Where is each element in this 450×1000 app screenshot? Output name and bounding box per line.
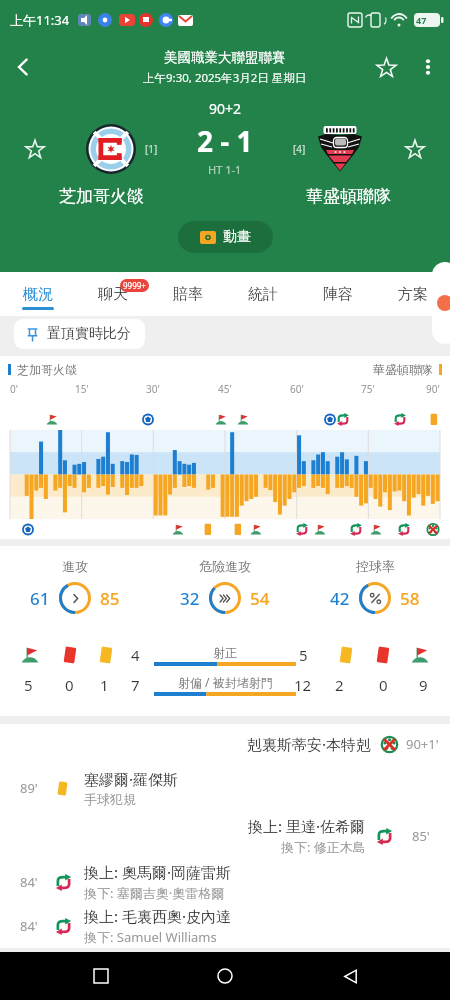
button[interactable]: 危險進攻	[150, 558, 300, 614]
staticText: 0	[379, 675, 388, 695]
button[interactable]: 控球率	[300, 558, 450, 614]
staticText: 9	[419, 675, 428, 695]
staticText: 聊天	[98, 285, 128, 304]
staticText: 84'	[20, 873, 38, 891]
staticText: 75'	[361, 382, 375, 396]
staticText: 芝加哥火燄	[30, 186, 173, 207]
button[interactable]: 賠率	[150, 272, 225, 316]
staticText: 47	[416, 14, 427, 26]
staticText: 陣容	[323, 285, 353, 304]
button[interactable]: 進攻	[0, 558, 150, 614]
button[interactable]: 陣容	[300, 272, 375, 316]
staticText: 54	[250, 587, 270, 610]
staticText: 5	[24, 675, 33, 695]
staticText: 58	[400, 587, 420, 610]
button[interactable]: Back	[0, 44, 46, 90]
staticText: 美國職業大聯盟聯賽	[164, 49, 286, 66]
staticText: 42	[330, 587, 350, 610]
staticText: 84'	[20, 917, 38, 935]
staticText: 上午11:34	[10, 11, 70, 29]
staticText: 上午9:30, 2025年3月2日 星期日	[143, 70, 307, 86]
button[interactable]: 置頂實時比分	[14, 319, 145, 349]
staticText: 89'	[20, 779, 38, 797]
staticText: 30'	[146, 382, 160, 396]
staticText: 9999+	[123, 280, 146, 291]
button[interactable]: Home	[201, 952, 249, 1000]
staticText: 2 - 1	[197, 122, 253, 160]
button[interactable]: More options	[408, 47, 448, 87]
staticText: 45'	[218, 382, 232, 396]
staticText: 85	[100, 587, 120, 610]
staticText: 1	[100, 675, 109, 695]
staticText: 換上: 奧馬爾·岡薩雷斯	[84, 862, 232, 882]
staticText: 90+1'	[406, 735, 439, 753]
button[interactable]: 方案	[375, 272, 450, 316]
staticText: 2	[335, 675, 344, 695]
staticText: 統計	[248, 285, 278, 304]
staticText: 90+2	[0, 99, 450, 118]
staticText: 60'	[290, 382, 304, 396]
staticText: 換下: 修正木島	[281, 838, 366, 856]
staticText: 換上: 毛裏西奧·皮內達	[84, 906, 232, 926]
staticText: 4	[131, 645, 140, 665]
staticText: 射偏 / 被封堵射門	[178, 674, 273, 690]
button[interactable]: 85'	[0, 812, 450, 860]
staticText: 12	[294, 675, 312, 695]
staticText: 芝加哥火燄	[17, 362, 77, 377]
staticText: 90'	[426, 382, 440, 396]
button[interactable]: Back	[326, 952, 374, 1000]
button[interactable]: Favourite	[364, 45, 408, 89]
button[interactable]: 84'	[0, 860, 450, 904]
staticText: 射正	[213, 645, 237, 660]
staticText: 進攻	[62, 558, 88, 574]
button[interactable]: 剋裏斯蒂安·本特剋	[0, 724, 450, 764]
staticText: 華盛頓聯隊	[373, 362, 433, 377]
staticText: 置頂實時比分	[47, 325, 131, 343]
staticText: 控球率	[356, 558, 395, 574]
button[interactable]: Favourite home team	[0, 120, 70, 178]
button[interactable]: Momentum chart	[0, 400, 450, 539]
staticText: 5	[299, 645, 308, 665]
staticText: 0'	[10, 382, 18, 396]
button[interactable]: 概況	[0, 272, 75, 316]
button[interactable]: 統計	[225, 272, 300, 316]
staticText: 15'	[75, 382, 89, 396]
staticText: 剋裏斯蒂安·本特剋	[247, 734, 372, 754]
button[interactable]: Promotions	[432, 262, 450, 344]
staticText: 7	[131, 675, 140, 695]
staticText: 概況	[23, 285, 53, 304]
staticText: 換下: Samuel Williams	[84, 928, 217, 946]
staticText: 0	[65, 675, 74, 695]
staticText: 換上: 里達·佐希爾	[248, 816, 366, 836]
staticText: 塞繆爾·羅傑斯	[84, 769, 179, 789]
staticText: [4]	[293, 142, 306, 156]
staticText: [1]	[145, 142, 158, 156]
staticText: 手球犯規	[84, 791, 136, 807]
button[interactable]: Favourite away team	[380, 120, 450, 178]
button[interactable]: 聊天	[75, 272, 150, 316]
staticText: 賠率	[173, 285, 203, 304]
staticText: 華盛頓聯隊	[277, 186, 420, 207]
staticText: 動畫	[223, 228, 251, 246]
button[interactable]: 84'	[0, 904, 450, 948]
button[interactable]: Recents	[77, 952, 125, 1000]
button[interactable]: 動畫	[178, 221, 273, 253]
staticText: 危險進攻	[199, 558, 251, 574]
staticText: 85'	[412, 827, 430, 845]
staticText: HT 1-1	[208, 162, 242, 177]
staticText: 61	[30, 587, 50, 610]
staticText: 32	[180, 587, 200, 610]
button[interactable]: 89'	[0, 764, 450, 812]
staticText: 方案	[398, 285, 428, 304]
staticText: 換下: 塞爾吉奧·奧雷格爾	[84, 884, 225, 902]
